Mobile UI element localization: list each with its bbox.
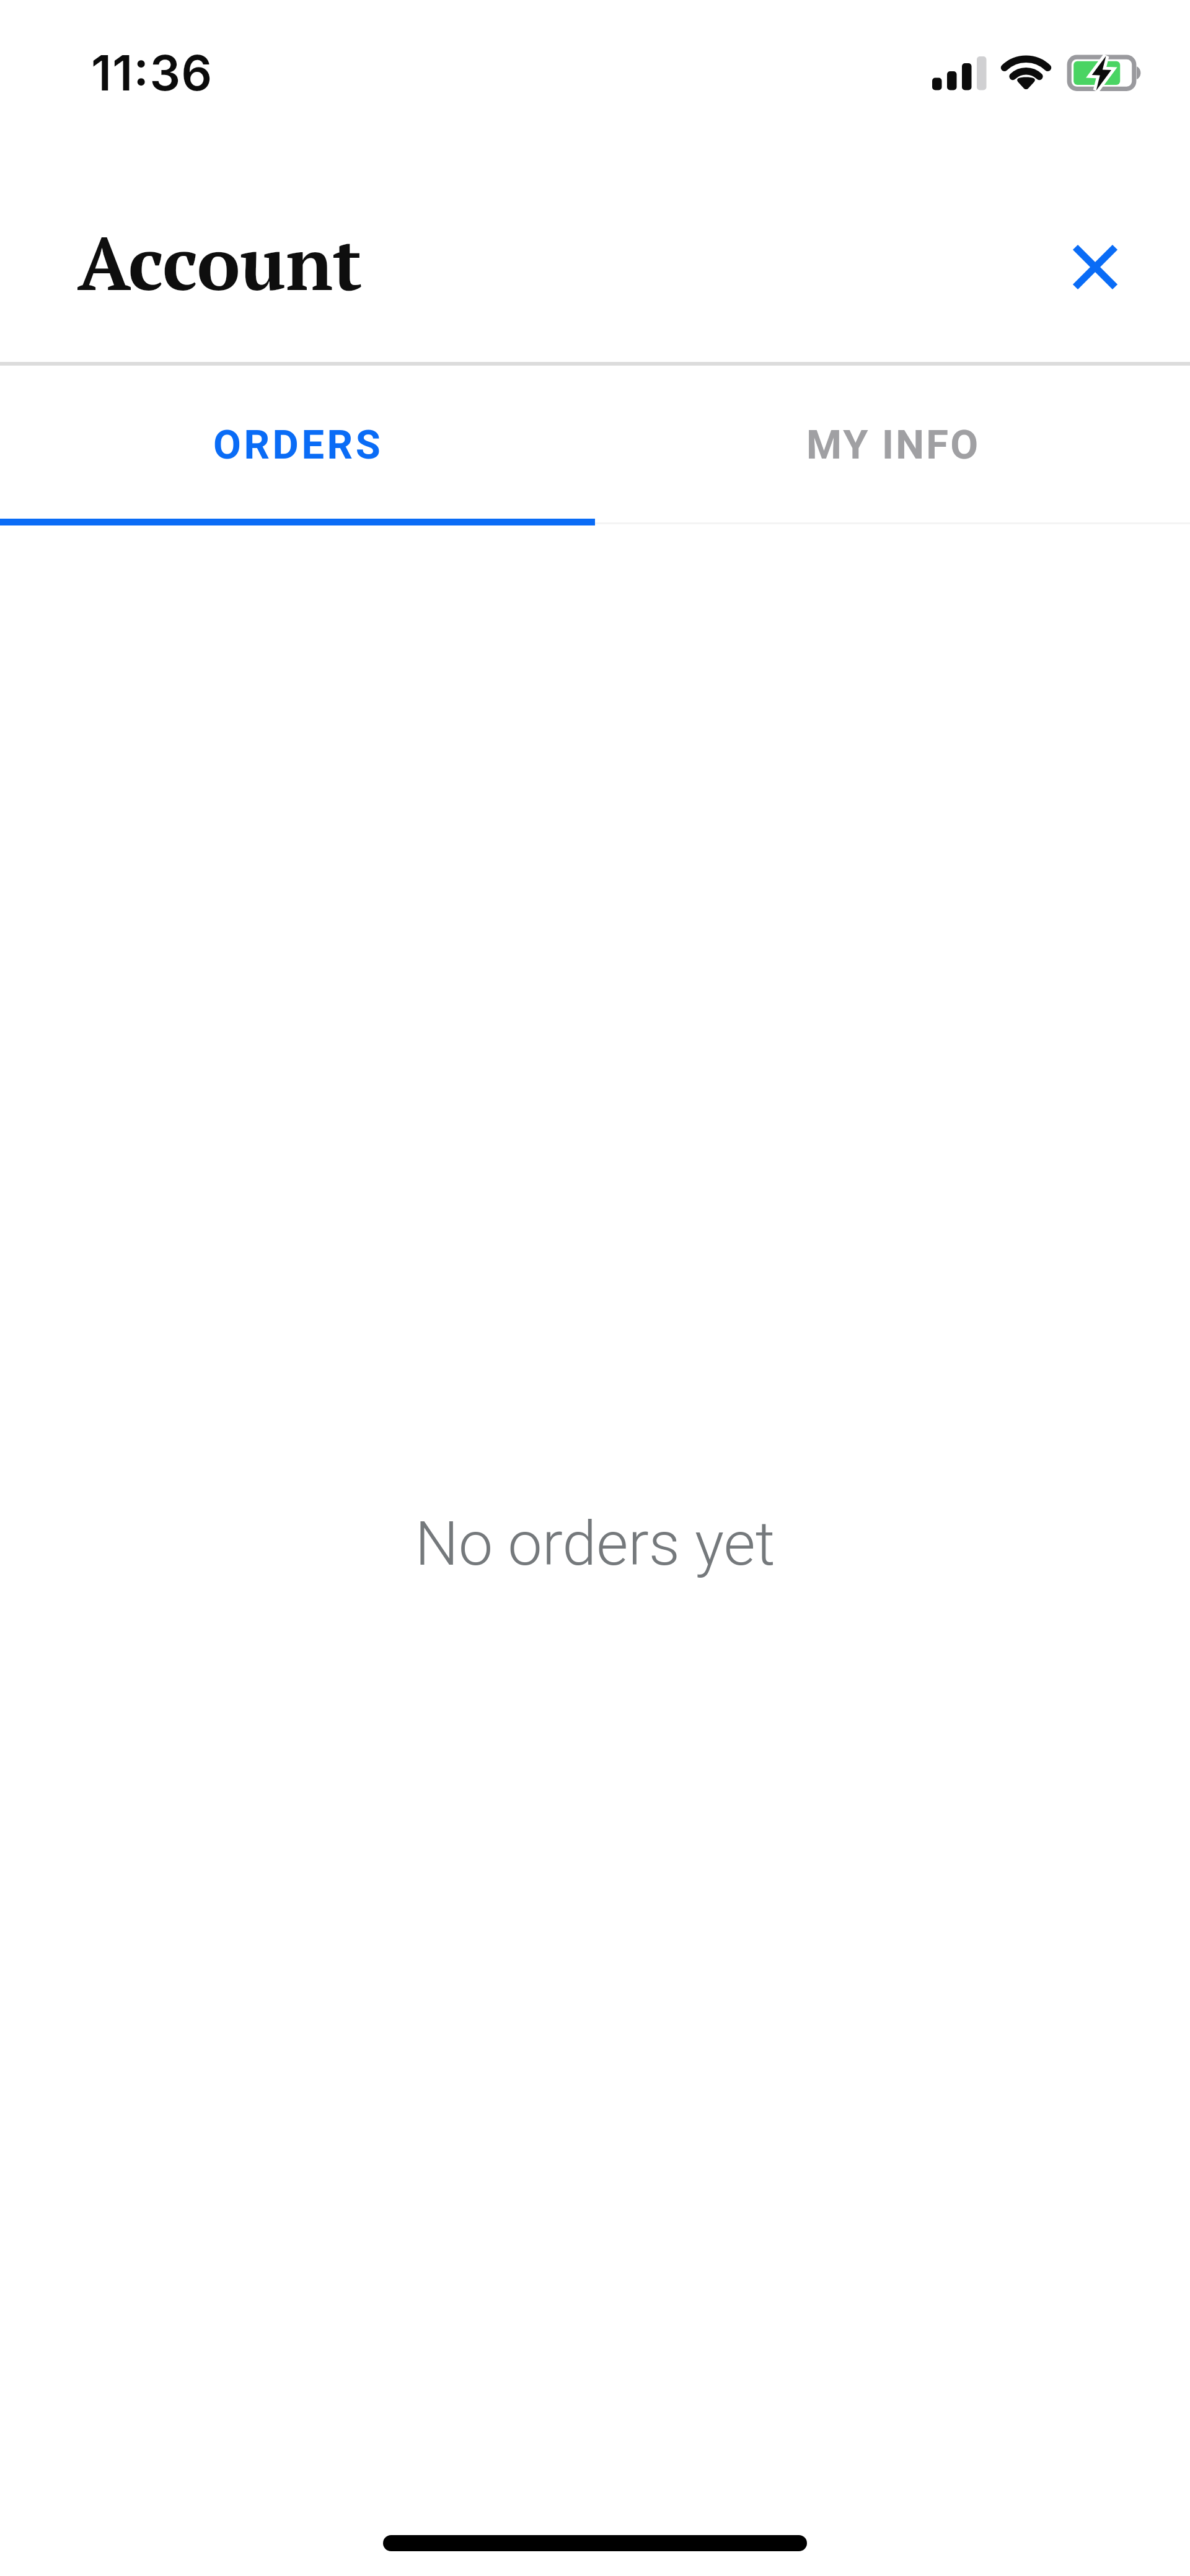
button[interactable]: MY INFO xyxy=(595,366,1190,525)
button[interactable]: ORDERS xyxy=(0,366,595,525)
staticText: 11:36 xyxy=(91,43,213,102)
staticText: MY INFO xyxy=(806,421,981,468)
button[interactable]: Close xyxy=(1061,233,1129,301)
staticText: ORDERS xyxy=(213,421,384,468)
staticText: Account xyxy=(77,214,363,310)
staticText: No orders yet xyxy=(0,1508,1190,1580)
